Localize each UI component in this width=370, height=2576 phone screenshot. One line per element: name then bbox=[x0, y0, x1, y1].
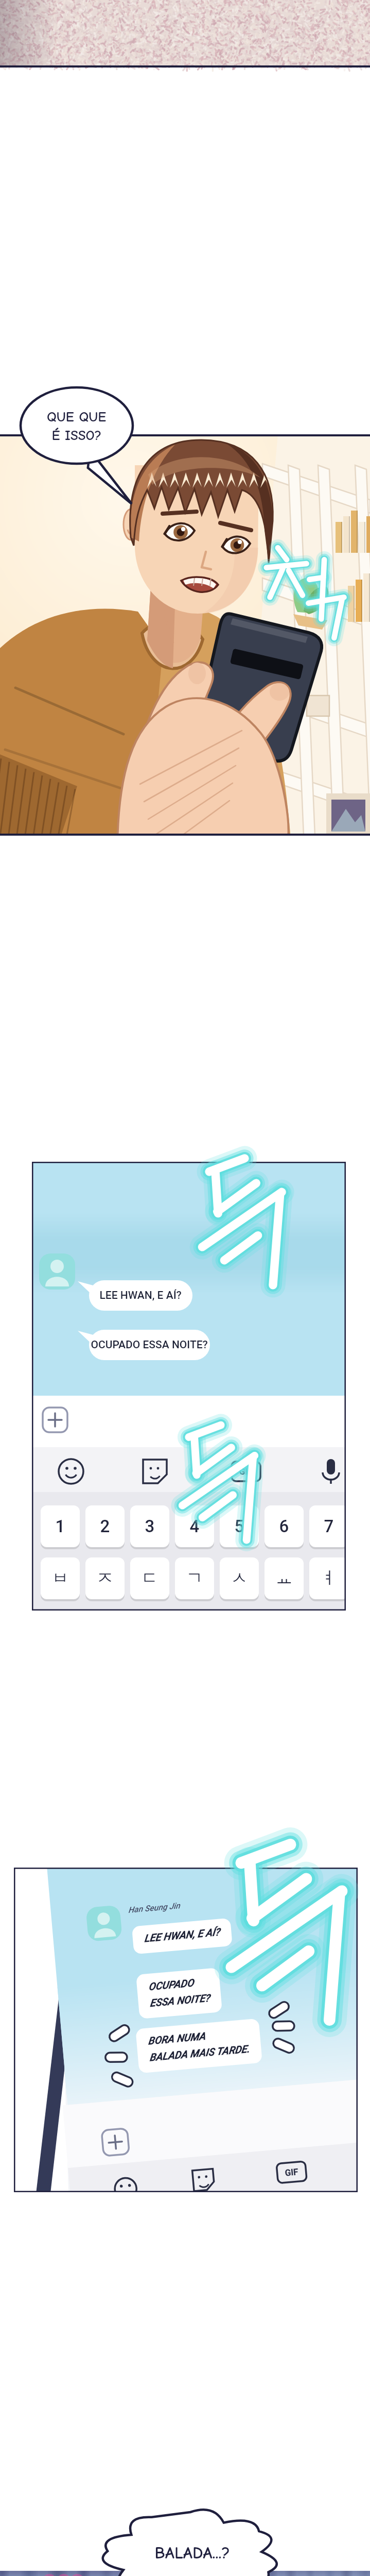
button[interactable] bbox=[0, 0, 370, 2576]
